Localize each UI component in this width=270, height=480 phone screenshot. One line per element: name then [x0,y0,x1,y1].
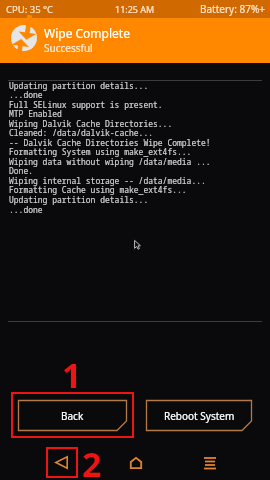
button[interactable]: Back [18,400,127,431]
staticText: Battery: 87%+ [200,2,265,16]
button[interactable]: Reboot System [146,400,252,431]
staticText: Wiping internal storage -- /data/media..… [9,175,206,186]
staticText: Reboot System [164,409,235,423]
staticText: 2 [82,441,102,480]
staticText: Formatting Cache using make_ext4fs... [9,184,187,195]
staticText: ...done [9,204,43,215]
button[interactable]: Home [120,449,151,477]
staticText: ...done [9,89,43,100]
staticText: Updating partition details... [9,80,149,91]
staticText: Wiping Dalvik Cache Directories... [9,118,173,129]
staticText: MTP Enabled [9,108,62,119]
staticText: Done. [9,165,33,176]
staticText: Wipe Complete [44,25,130,41]
staticText: Formatting System using make_ext4fs... [9,146,192,157]
staticText: CPU: 35 °C [6,3,54,16]
staticText: Updating partition details... [9,194,149,205]
staticText: Wiping data without wiping /data/media .… [9,156,211,167]
staticText: 1 [62,352,82,398]
staticText: Successful [44,41,93,55]
staticText: Cleaned: /data/dalvik-cache... [9,127,153,138]
staticText: Back [61,409,84,423]
staticText: Full SELinux support is present. [9,99,163,110]
button[interactable]: Back [46,448,77,477]
staticText: 11:25 AM [115,3,155,15]
button[interactable]: Menu [195,449,225,477]
staticText: -- Dalvik Cache Directories Wipe Complet… [9,137,211,148]
